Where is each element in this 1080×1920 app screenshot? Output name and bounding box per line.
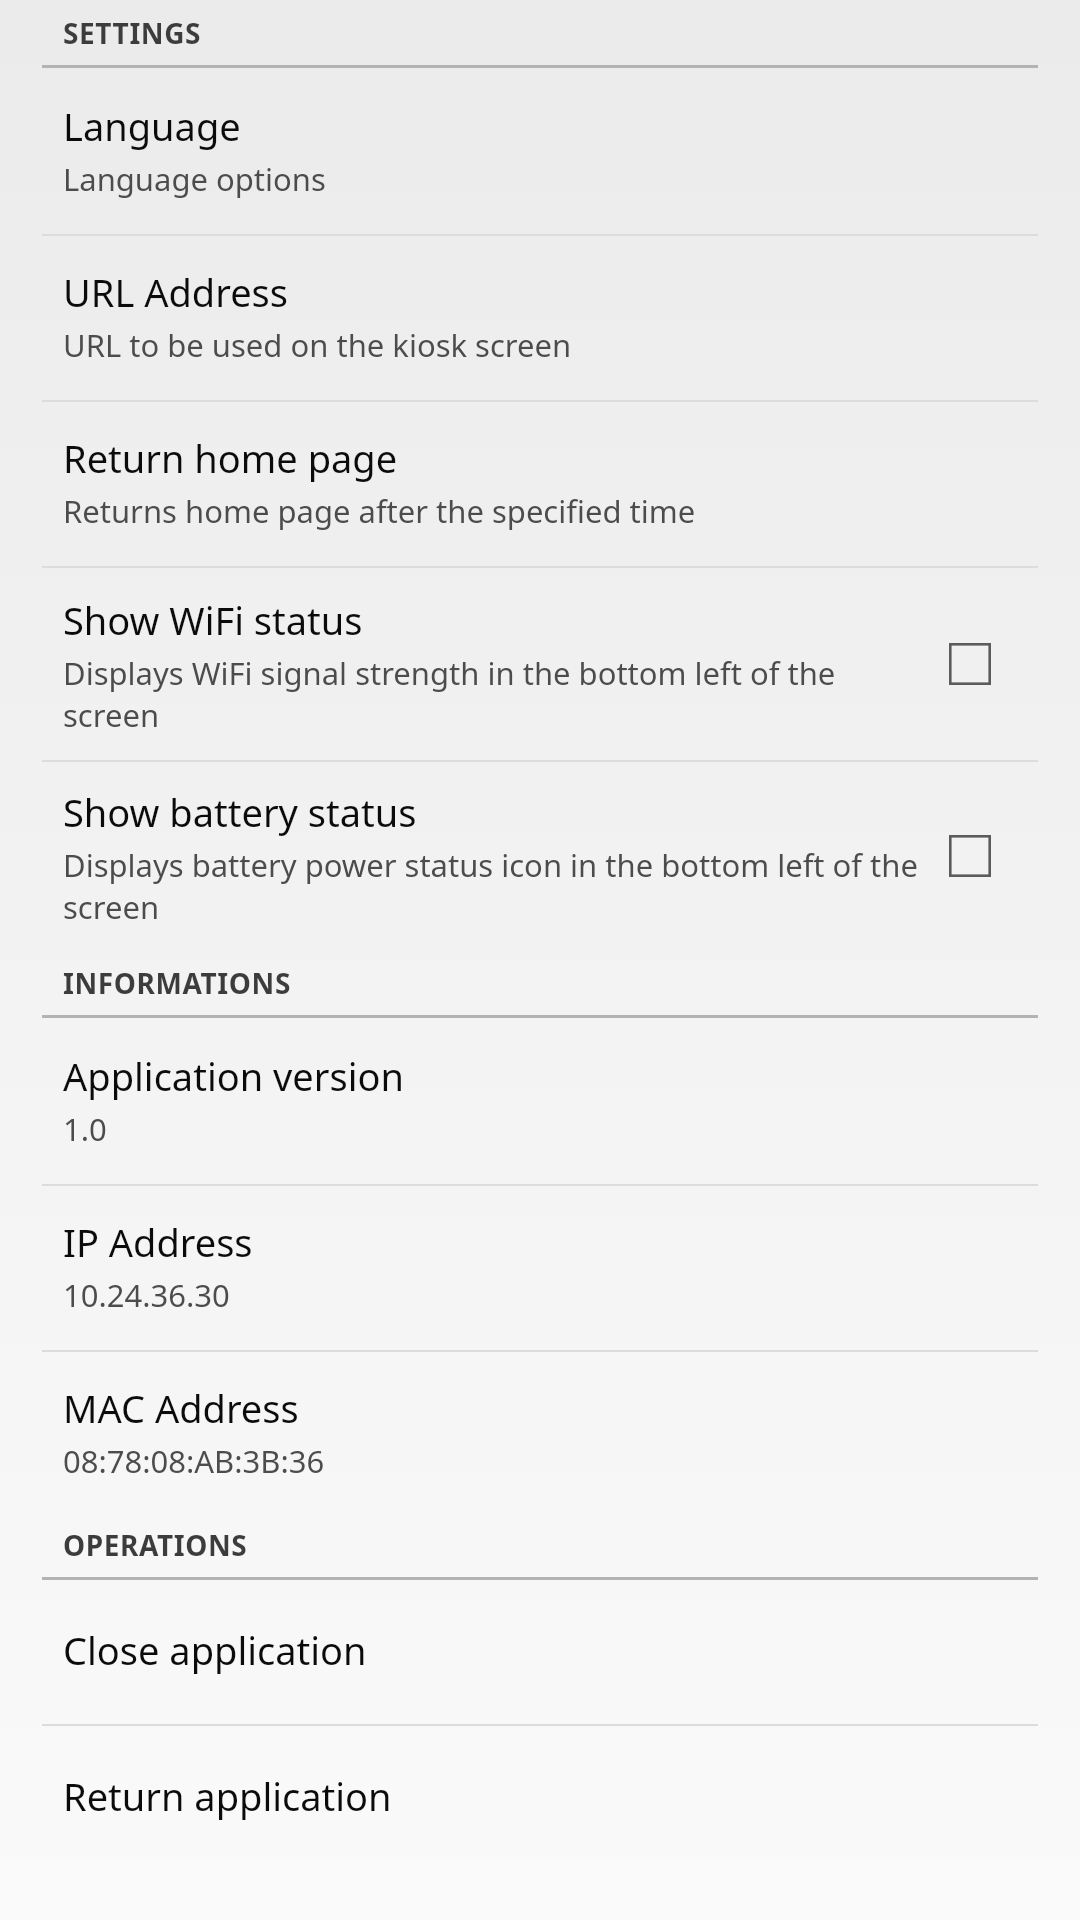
button[interactable]: IP Address bbox=[0, 1186, 1080, 1350]
button[interactable]: Application version bbox=[0, 1018, 1080, 1184]
staticText: 1.0 bbox=[63, 1108, 107, 1150]
staticText: URL to be used on the kiosk screen bbox=[63, 324, 572, 366]
staticText: SETTINGS bbox=[63, 14, 202, 52]
staticText: OPERATIONS bbox=[63, 1526, 248, 1564]
staticText: Returns home page after the specified ti… bbox=[63, 490, 696, 532]
button[interactable]: Close application bbox=[0, 1580, 1080, 1724]
staticText: 08:78:08:AB:3B:36 bbox=[63, 1440, 325, 1482]
staticText: 10.24.36.30 bbox=[63, 1274, 230, 1316]
staticText: Return application bbox=[63, 1770, 392, 1822]
staticText: IP Address bbox=[63, 1216, 253, 1268]
button[interactable]: Show battery status bbox=[0, 762, 1080, 950]
staticText: Show battery status bbox=[63, 786, 417, 838]
staticText: Application version bbox=[63, 1050, 404, 1102]
button[interactable]: URL Address bbox=[0, 236, 1080, 400]
button[interactable]: Return home page bbox=[0, 402, 1080, 566]
staticText: MAC Address bbox=[63, 1382, 299, 1434]
button[interactable]: Toggle checkbox bbox=[928, 622, 1012, 706]
button[interactable]: Return application bbox=[0, 1726, 1080, 1870]
staticText: Displays WiFi signal strength in the bot… bbox=[63, 652, 920, 736]
button[interactable]: Language bbox=[0, 68, 1080, 234]
button[interactable]: MAC Address bbox=[0, 1352, 1080, 1512]
button[interactable]: Toggle checkbox bbox=[928, 814, 1012, 898]
staticText: Close application bbox=[63, 1624, 367, 1676]
staticText: Displays battery power status icon in th… bbox=[63, 844, 920, 928]
button[interactable]: Show WiFi status bbox=[0, 568, 1080, 760]
staticText: Language bbox=[63, 100, 241, 152]
staticText: URL Address bbox=[63, 266, 288, 318]
staticText: Language options bbox=[63, 158, 326, 200]
staticText: Return home page bbox=[63, 432, 398, 484]
staticText: Show WiFi status bbox=[63, 594, 363, 646]
staticText: INFORMATIONS bbox=[63, 964, 291, 1002]
